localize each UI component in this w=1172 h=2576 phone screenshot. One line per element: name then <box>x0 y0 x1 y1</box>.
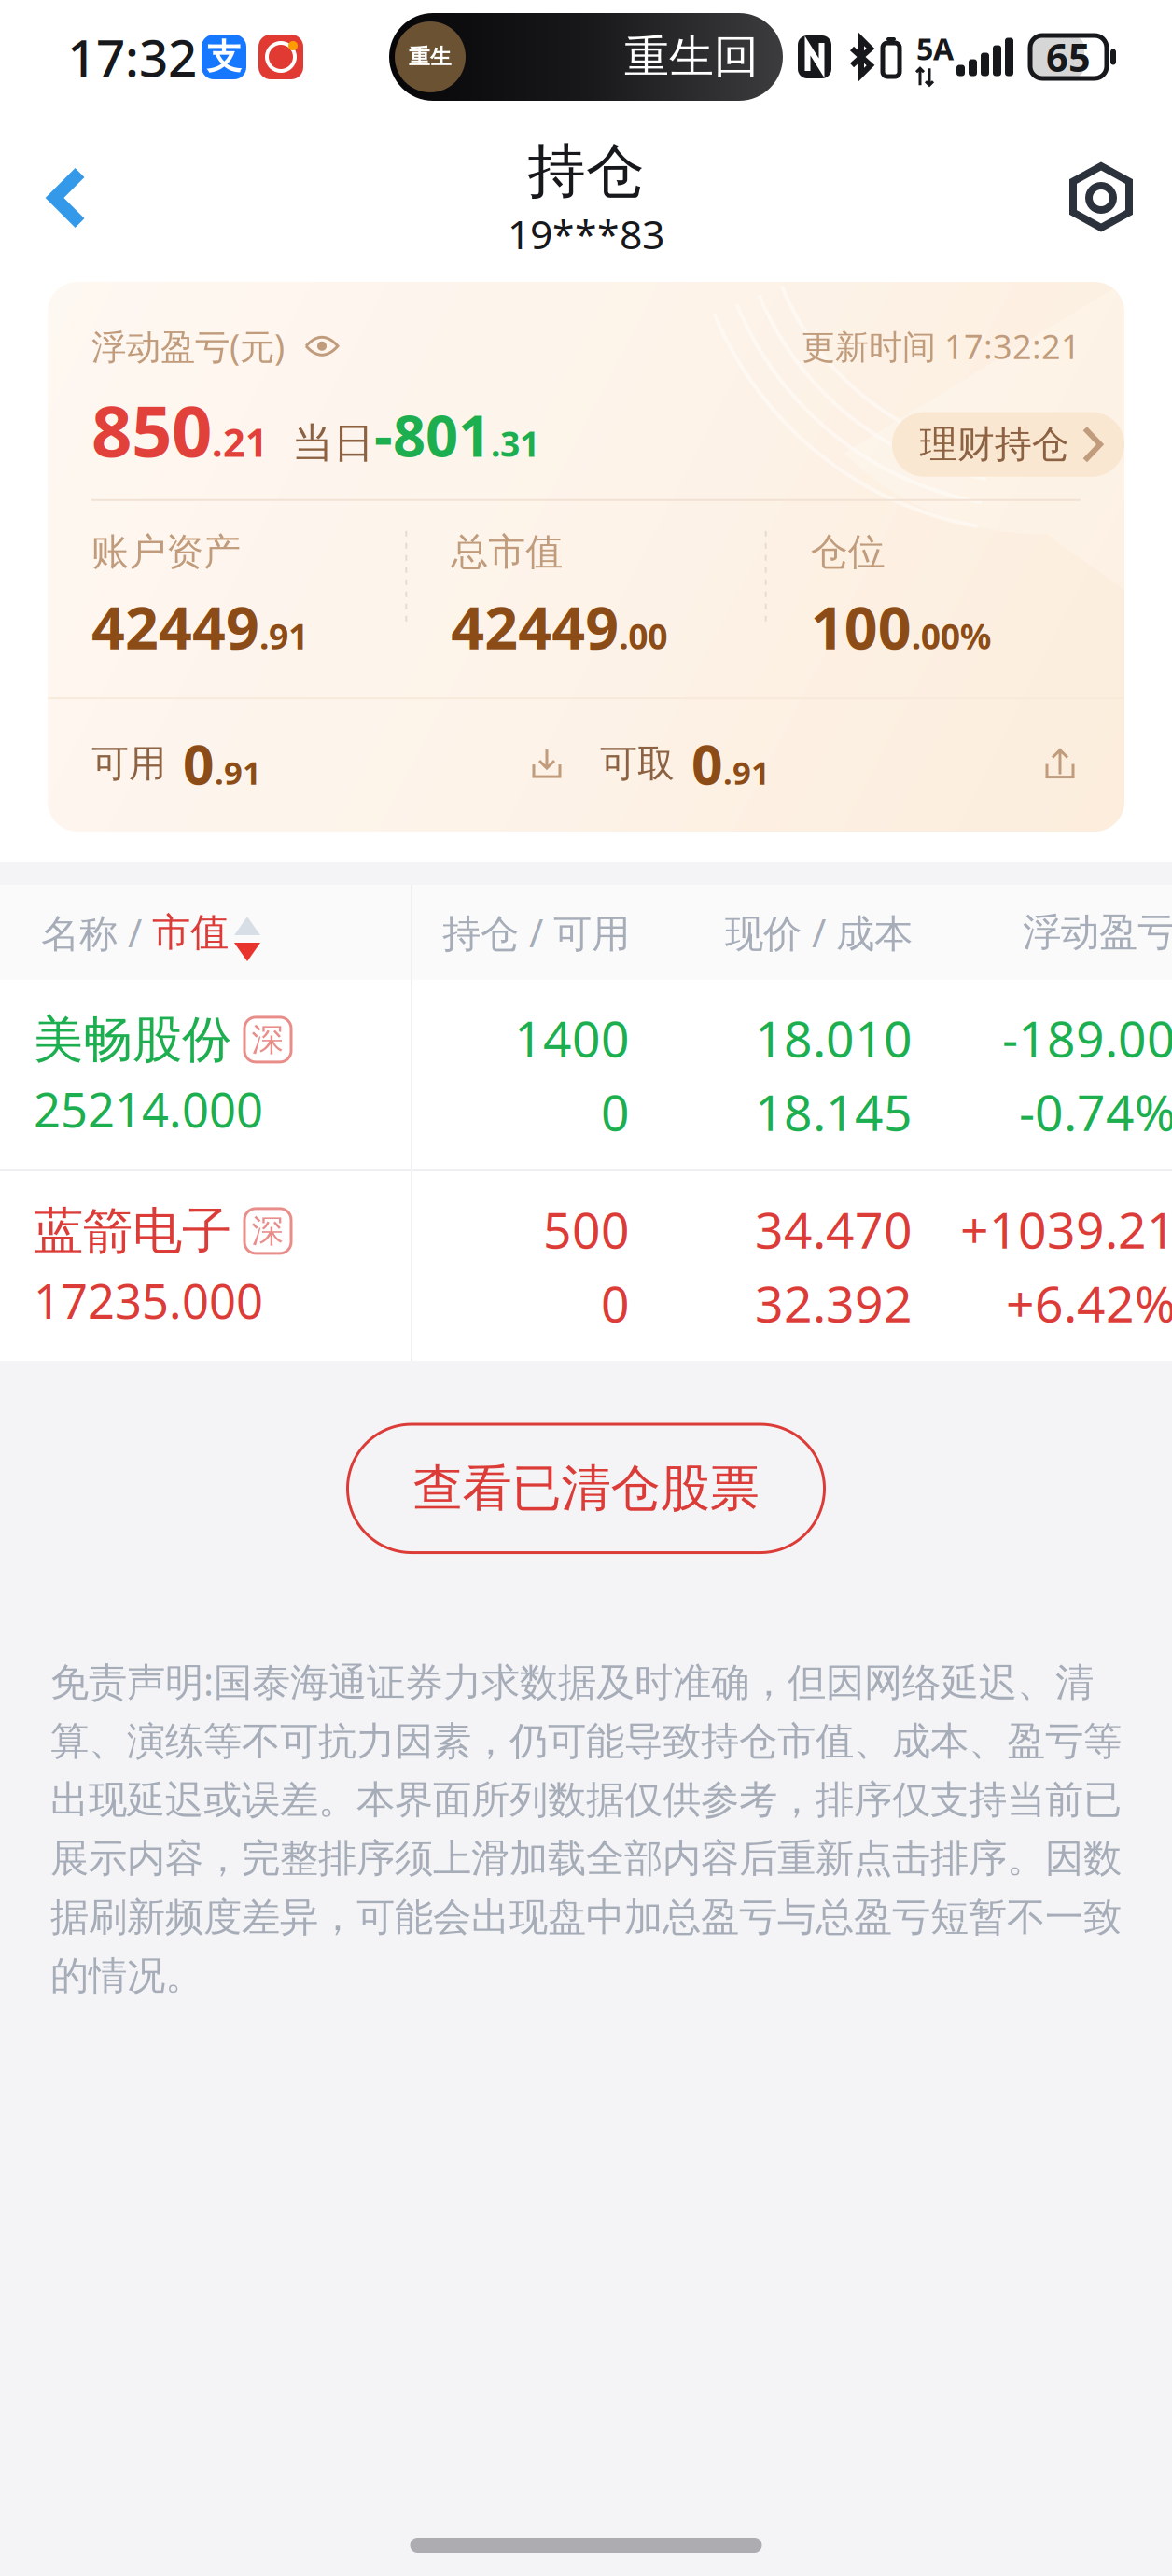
staticText: 现价 / 成本 <box>725 907 913 958</box>
staticText: -801 <box>374 397 491 473</box>
staticText: 市值 <box>152 909 229 956</box>
staticText: 持仓 / 可用 <box>442 907 630 958</box>
staticText: 500 <box>543 1196 630 1262</box>
staticText: -189.00 <box>1002 1005 1172 1071</box>
staticText: 42449 <box>451 588 619 666</box>
staticText: 5A <box>916 29 954 68</box>
staticText: -0.74% <box>1019 1078 1172 1145</box>
staticText: 浮动盈亏(元) <box>91 323 285 369</box>
staticText: +6.42% <box>1006 1270 1172 1336</box>
staticText: 名称 / <box>41 907 152 958</box>
staticText: 100 <box>811 588 911 666</box>
button[interactable]: Share <box>1039 743 1081 784</box>
staticText: 可用 <box>91 741 166 786</box>
staticText: 18.010 <box>755 1005 913 1071</box>
staticText: 仓位 <box>811 529 885 575</box>
staticText: 重生 <box>409 44 452 70</box>
staticText: 重生回 <box>624 29 759 84</box>
staticText: 0 <box>691 727 723 800</box>
button[interactable]: 美畅股份 <box>0 980 1172 1169</box>
staticText: .00 <box>619 613 667 659</box>
staticText: 42449 <box>91 588 259 666</box>
staticText: 支 <box>207 36 241 78</box>
staticText: 免责声明:国泰海通证券力求数据及时准确，但因网络延迟、清算、演练等不可抗力因素，… <box>50 1655 1122 1999</box>
staticText: .91 <box>723 751 770 794</box>
button[interactable]: 理财持仓 <box>892 412 1124 477</box>
staticText: 19***83 <box>508 207 664 260</box>
staticText: 65 <box>1046 31 1091 83</box>
staticText: 17:32 <box>67 23 197 91</box>
staticText: 浮动盈亏 <box>1023 909 1172 956</box>
staticText: 深 <box>251 1020 284 1060</box>
button[interactable]: Settings <box>1056 153 1146 243</box>
staticText: 0 <box>183 727 215 800</box>
staticText: 总市值 <box>451 529 563 575</box>
button[interactable]: 查看已清仓股票 <box>348 1424 824 1553</box>
staticText: 1400 <box>514 1005 630 1071</box>
staticText: 可取 <box>600 741 675 786</box>
staticText: 0 <box>601 1078 630 1145</box>
staticText: 17235.000 <box>34 1269 263 1332</box>
staticText: 理财持仓 <box>920 421 1069 467</box>
staticText: 蓝箭电子 <box>34 1200 231 1261</box>
staticText: 深 <box>251 1211 284 1251</box>
staticText: .31 <box>491 420 539 467</box>
staticText: .00% <box>911 613 992 659</box>
staticText: 持仓 <box>527 136 645 207</box>
staticText: 账户资产 <box>91 529 241 575</box>
staticText: 850 <box>91 382 212 476</box>
staticText: .91 <box>215 751 261 794</box>
staticText: 查看已清仓股票 <box>413 1458 759 1519</box>
staticText: .91 <box>259 613 308 659</box>
staticText: 当日 <box>292 418 374 468</box>
staticText: 美畅股份 <box>34 1009 231 1070</box>
button[interactable]: 蓝箭电子 <box>0 1171 1172 1361</box>
staticText: 25214.000 <box>34 1078 263 1140</box>
staticText: 32.392 <box>755 1270 913 1336</box>
button[interactable]: 名称 / <box>0 903 411 961</box>
staticText: +1039.21 <box>960 1196 1172 1262</box>
staticText: 34.470 <box>755 1196 913 1262</box>
staticText: 0 <box>601 1270 630 1336</box>
staticText: .21 <box>212 416 268 468</box>
staticText: 18.145 <box>755 1078 913 1145</box>
staticText: 更新时间 17:32:21 <box>802 324 1081 368</box>
button[interactable]: Back <box>21 151 114 245</box>
